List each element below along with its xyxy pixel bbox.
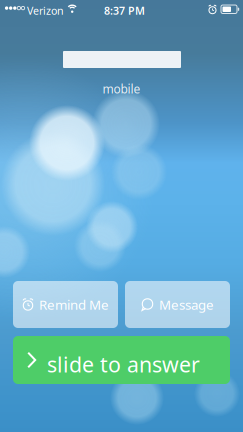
button[interactable]: slide to answer	[13, 336, 230, 384]
button[interactable]: Message	[125, 281, 230, 328]
button[interactable]: Remind Me	[13, 281, 118, 328]
staticText: Message	[159, 296, 214, 313]
staticText: mobile	[102, 81, 140, 97]
staticText: slide to answer	[47, 350, 200, 378]
staticText: Remind Me	[39, 296, 109, 313]
staticText: Verizon	[27, 3, 64, 18]
staticText: 8:37 PM	[104, 3, 145, 18]
